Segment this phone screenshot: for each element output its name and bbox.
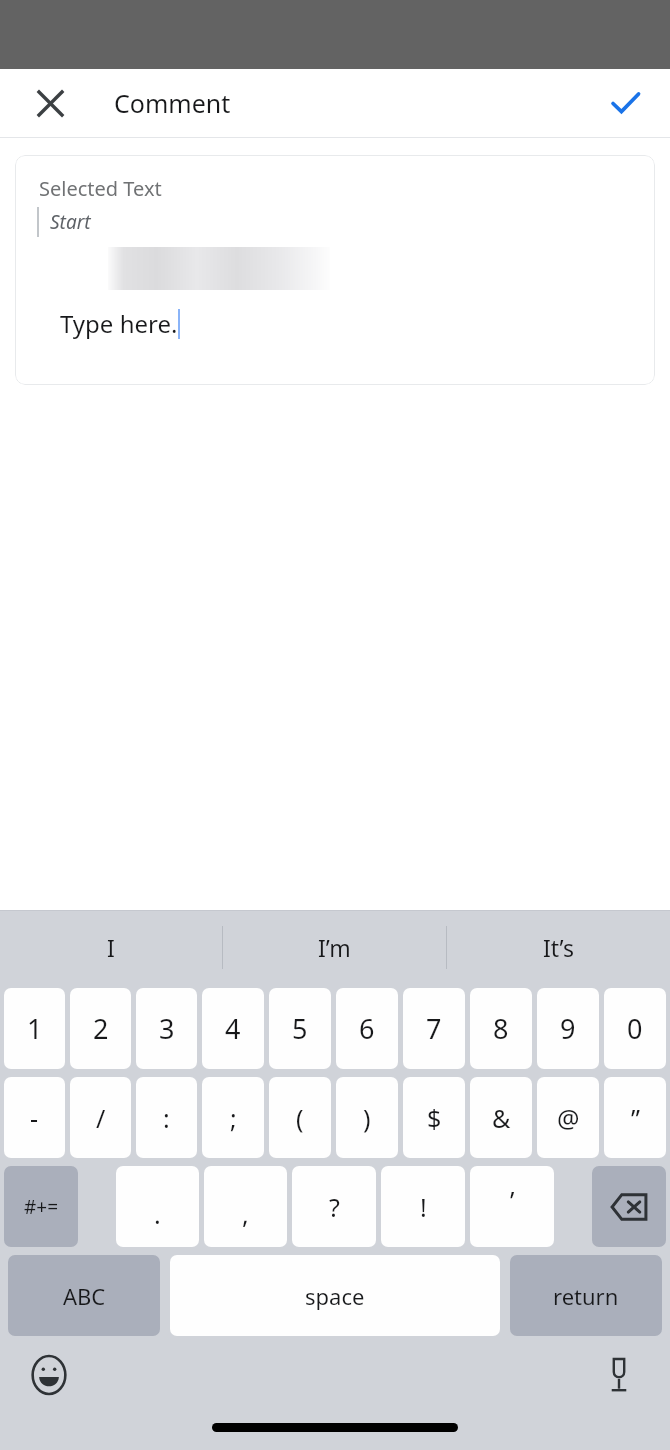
button[interactable]: )	[336, 1077, 398, 1158]
button[interactable]: ABC	[8, 1255, 160, 1336]
button[interactable]: ?	[292, 1166, 376, 1247]
button[interactable]: :	[136, 1077, 197, 1158]
button[interactable]: Close	[23, 76, 77, 130]
staticText: 6	[359, 1010, 375, 1047]
staticText: 8	[493, 1010, 509, 1047]
staticText: @	[557, 1101, 580, 1135]
button[interactable]: $	[403, 1077, 465, 1158]
staticText: Comment	[114, 86, 231, 120]
button[interactable]: !	[381, 1166, 465, 1247]
button[interactable]: .	[116, 1166, 199, 1247]
button[interactable]: 1	[4, 988, 65, 1069]
staticText: return	[553, 1281, 619, 1311]
staticText: 7	[426, 1010, 442, 1047]
button[interactable]: 0	[604, 988, 666, 1069]
button[interactable]: (	[269, 1077, 331, 1158]
staticText: )	[363, 1101, 371, 1135]
staticText: ,	[242, 1197, 249, 1231]
button[interactable]: I’m	[223, 911, 446, 984]
button[interactable]: 8	[470, 988, 532, 1069]
button[interactable]: ,	[204, 1166, 287, 1247]
button[interactable]: ’	[470, 1166, 554, 1247]
staticText: 9	[560, 1010, 576, 1047]
staticText: I	[107, 932, 115, 963]
button[interactable]: /	[70, 1077, 131, 1158]
staticText: Type here.	[60, 307, 178, 340]
staticText: ;	[230, 1101, 237, 1135]
button[interactable]: ”	[604, 1077, 666, 1158]
button[interactable]: 9	[537, 988, 599, 1069]
button[interactable]: 4	[202, 988, 264, 1069]
button[interactable]: 7	[403, 988, 465, 1069]
staticText: 5	[292, 1010, 308, 1047]
button[interactable]: 2	[70, 988, 131, 1069]
button[interactable]: Confirm	[598, 76, 652, 130]
staticText: :	[163, 1101, 170, 1135]
staticText: 2	[93, 1010, 109, 1047]
staticText: /	[96, 1101, 106, 1135]
staticText: !	[420, 1190, 427, 1224]
button[interactable]: return	[510, 1255, 662, 1336]
staticText: 4	[225, 1010, 241, 1047]
staticText: (	[296, 1101, 304, 1135]
staticText: ABC	[63, 1281, 106, 1311]
staticText: #+=	[24, 1194, 59, 1220]
staticText: $	[427, 1101, 442, 1135]
button[interactable]: @	[537, 1077, 599, 1158]
staticText: 3	[159, 1010, 175, 1047]
staticText: ’	[510, 1183, 515, 1217]
button[interactable]: 5	[269, 988, 331, 1069]
staticText: space	[305, 1281, 365, 1311]
staticText: Start	[50, 209, 91, 235]
button[interactable]: Selected Text	[15, 155, 655, 385]
staticText: 0	[627, 1010, 643, 1047]
staticText: Selected Text	[39, 175, 162, 202]
button[interactable]: Emoji	[20, 1346, 78, 1404]
staticText: ”	[631, 1101, 640, 1135]
button[interactable]: Voice input	[590, 1346, 648, 1404]
button[interactable]: ;	[202, 1077, 264, 1158]
staticText: It’s	[543, 932, 574, 963]
button[interactable]: 6	[336, 988, 398, 1069]
staticText: &	[492, 1101, 511, 1135]
button[interactable]: It’s	[447, 911, 670, 984]
button[interactable]: I	[0, 911, 222, 984]
button[interactable]: -	[4, 1077, 65, 1158]
staticText: .	[154, 1197, 161, 1231]
staticText: -	[30, 1101, 39, 1135]
button[interactable]: 3	[136, 988, 197, 1069]
button[interactable]: #+=	[4, 1166, 78, 1247]
button[interactable]: Backspace	[592, 1166, 666, 1247]
button[interactable]: &	[470, 1077, 532, 1158]
staticText: ?	[329, 1190, 340, 1224]
staticText: I’m	[318, 932, 351, 963]
staticText: 1	[27, 1010, 43, 1047]
button[interactable]: space	[170, 1255, 500, 1336]
